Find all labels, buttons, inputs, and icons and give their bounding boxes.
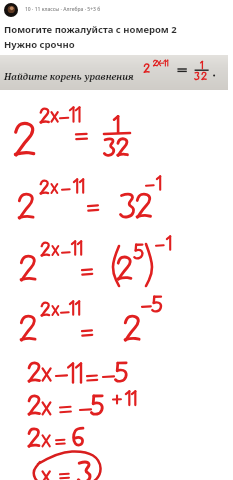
button[interactable]: 10 · 11 классы · Алгебра · 5+3 б bbox=[0, 0, 233, 19]
button[interactable]: Найдите корень уравнения bbox=[0, 55, 228, 90]
staticText: Найдите корень уравнения bbox=[4, 70, 134, 82]
staticText: 10 · 11 классы · Алгебра · 5+3 б bbox=[25, 6, 101, 13]
staticText: Нужно срочно bbox=[4, 38, 75, 51]
button[interactable]: Фото решения bbox=[0, 90, 233, 480]
staticText: Помогите пожалуйста с номером 2 bbox=[4, 23, 177, 36]
